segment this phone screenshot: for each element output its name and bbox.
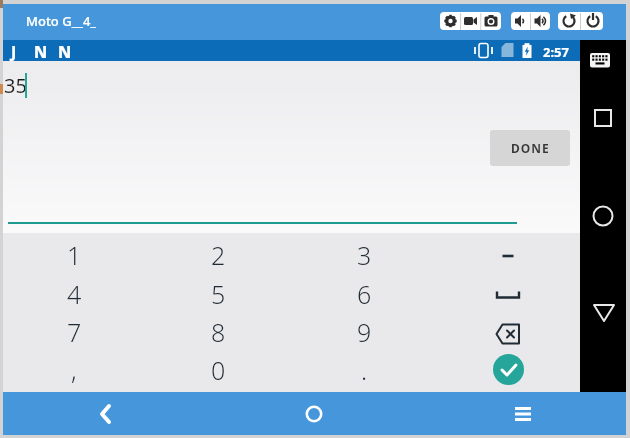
button[interactable]: 2 [146,235,290,274]
staticText: N [58,41,72,63]
button[interactable] [436,236,580,275]
button[interactable] [586,49,614,71]
staticText: , [71,353,77,387]
staticText: 4 [67,277,82,311]
staticText: DONE [511,140,550,156]
button[interactable] [436,275,580,314]
button[interactable] [290,392,338,435]
button[interactable]: 4 [2,274,146,313]
staticText: J [11,41,17,63]
button[interactable]: 9 [292,312,436,351]
staticText: . [361,353,368,387]
button[interactable] [588,201,618,231]
staticText: 6 [357,277,372,311]
staticText: 9 [357,315,372,349]
button[interactable] [588,103,618,133]
button[interactable] [440,12,501,30]
button[interactable]: 7 [2,312,146,351]
staticText: 5 [211,277,226,311]
button[interactable]: , [2,350,146,389]
button[interactable] [436,350,580,389]
button[interactable] [558,12,603,30]
staticText: 35 [4,72,27,99]
button[interactable]: 3 [292,235,436,274]
staticText: 1 [67,238,82,272]
button[interactable]: 1 [2,235,146,274]
button[interactable] [511,12,550,30]
button[interactable] [436,314,580,353]
button[interactable]: . [292,350,436,389]
staticText: 0 [211,353,226,387]
button[interactable] [589,298,619,326]
staticText: 2:57 [543,43,569,61]
staticText: 7 [67,315,82,349]
button[interactable]: DONE [490,130,570,166]
staticText: N [34,41,48,63]
button[interactable]: 6 [292,274,436,313]
button[interactable] [82,392,130,435]
button[interactable]: 5 [146,274,290,313]
button[interactable]: 8 [146,312,290,351]
staticText: 8 [211,315,226,349]
button[interactable] [499,392,547,435]
staticText: 3 [357,238,372,272]
staticText: Moto G__4_ [26,12,96,30]
button[interactable]: 0 [146,350,290,389]
staticText: 2 [211,238,226,272]
